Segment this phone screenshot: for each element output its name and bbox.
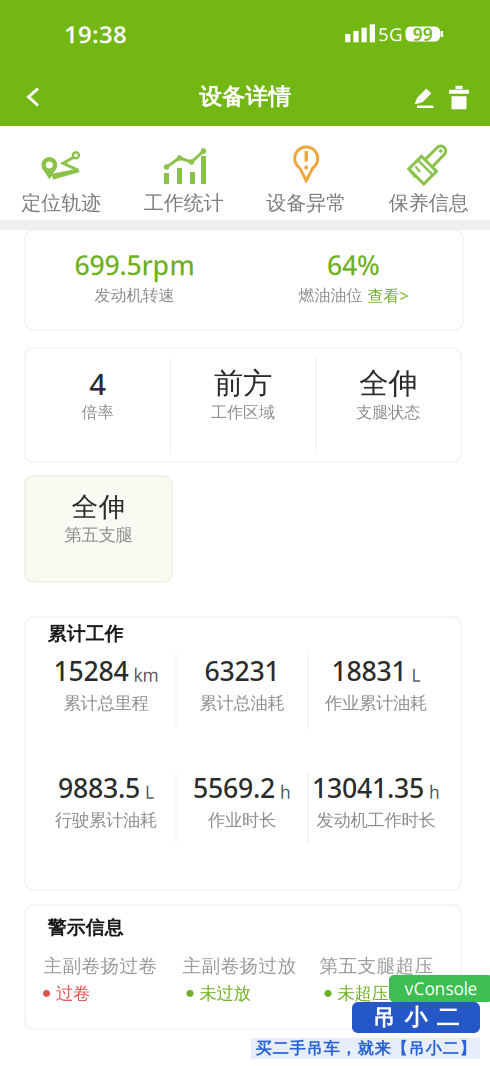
staticText: 主副卷扬过卷 [44, 954, 158, 977]
staticText: h [280, 780, 291, 803]
button[interactable]: Back [14, 83, 54, 111]
staticText: 64% [327, 247, 380, 283]
staticText: 作业时长 [208, 810, 276, 831]
staticText: 第五支腿超压 [319, 954, 433, 977]
staticText: 19:38 [64, 18, 127, 50]
staticText: 吊 小 二 [372, 1004, 459, 1031]
staticText: 警示信息 [47, 916, 123, 939]
staticText: L [145, 780, 154, 803]
staticText: h [429, 780, 440, 803]
button[interactable]: 定位轨迹 [0, 126, 122, 222]
staticText: 过卷 [56, 983, 90, 1004]
staticText: 作业累计油耗 [325, 693, 427, 714]
staticText: 设备详情 [199, 83, 291, 111]
staticText: 保养信息 [389, 191, 469, 215]
staticText: 全伸 [71, 491, 125, 523]
staticText: 主副卷扬过放 [182, 954, 296, 977]
staticText: 4 [89, 364, 106, 403]
button[interactable]: Delete [449, 86, 469, 109]
staticText: 买二手吊车，就来【吊小二】 [255, 1039, 475, 1058]
staticText: 5G [378, 22, 403, 46]
button[interactable]: Edit [412, 86, 440, 110]
button[interactable]: 工作统计 [122, 126, 245, 222]
button[interactable]: 保养信息 [367, 126, 490, 222]
staticText: 未过放 [199, 983, 250, 1004]
staticText: km [133, 663, 158, 686]
button[interactable]: 查看> [367, 285, 408, 306]
staticText: 5569.2 [193, 770, 275, 805]
staticText: 工作统计 [144, 191, 224, 215]
staticText: 前方 [214, 365, 272, 401]
staticText: 13041.35 [312, 770, 424, 805]
staticText: 倍率 [82, 403, 114, 422]
staticText: 查看> [367, 285, 408, 306]
staticText: 699.5rpm [74, 247, 194, 283]
staticText: 发动机工作时长 [316, 810, 435, 831]
staticText: 累计总油耗 [199, 693, 284, 714]
staticText: 63231 [204, 653, 279, 688]
staticText: vConsole [404, 977, 477, 1000]
staticText: 99 [413, 22, 433, 45]
staticText: 第五支腿 [64, 524, 132, 546]
staticText: 全伸 [359, 365, 417, 401]
staticText: 工作区域 [211, 403, 275, 422]
button[interactable]: 买二手吊车，就来【吊小二】 [251, 1038, 480, 1059]
staticText: 定位轨迹 [21, 191, 101, 215]
staticText: 设备异常 [266, 191, 346, 215]
staticText: 燃油油位 [298, 286, 362, 305]
staticText: 累计工作 [47, 622, 123, 645]
staticText: 行驶累计油耗 [55, 810, 157, 831]
staticText: 15284 [53, 653, 128, 688]
button[interactable]: vConsole [389, 975, 490, 1002]
staticText: 累计总里程 [63, 693, 148, 714]
staticText: 18831 [331, 653, 406, 688]
button[interactable]: 吊 小 二 [352, 1002, 480, 1033]
staticText: 发动机转速 [94, 286, 174, 305]
staticText: 未超压 [337, 983, 388, 1004]
staticText: 9883.5 [58, 770, 140, 805]
staticText: 支腿状态 [356, 403, 420, 422]
button[interactable]: 设备异常 [245, 126, 367, 222]
staticText: L [411, 663, 420, 686]
